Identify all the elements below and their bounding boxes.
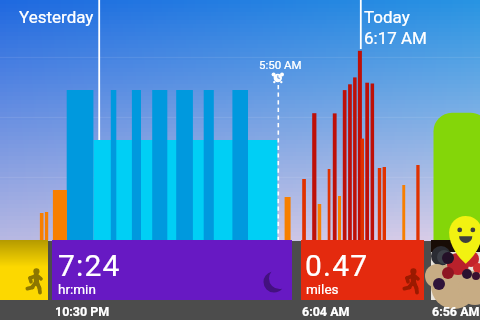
staticText: 6:17 AM [364,28,427,48]
button[interactable]: 7:24 [52,240,292,300]
button[interactable]: Meal photo [431,240,480,300]
button[interactable]: Activity [0,240,48,300]
staticText: 6:04 AM [302,304,350,319]
button[interactable]: 0.47 [301,240,424,300]
staticText: Today [364,7,410,27]
staticText: 0.47 [305,248,369,283]
staticText: miles [306,281,339,297]
staticText: 5:50 AM [259,58,302,71]
staticText: Yesterday [19,7,94,27]
staticText: 7:24 [58,248,121,283]
staticText: hr:min [58,281,96,297]
staticText: 6:56 AM [432,304,480,319]
staticText: 10:30 PM [55,304,110,319]
